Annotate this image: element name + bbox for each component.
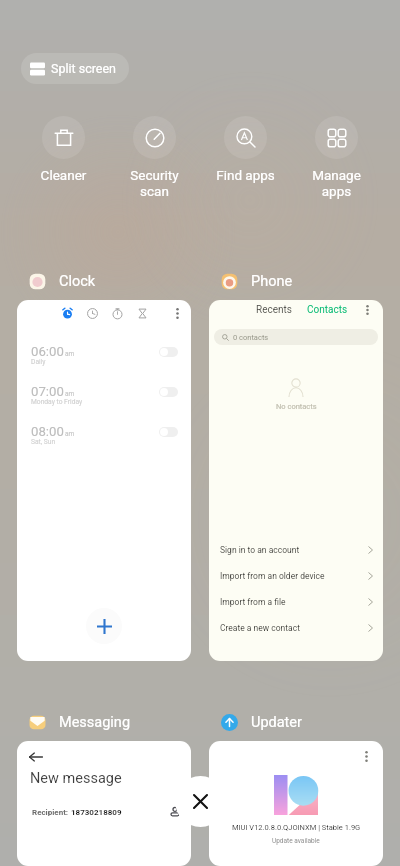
staticText: Create a new contact bbox=[220, 623, 300, 633]
staticText: 07:00 bbox=[31, 384, 64, 399]
button[interactable]: 06:00 bbox=[17, 300, 191, 661]
button[interactable]: Manage apps bbox=[291, 116, 382, 199]
staticText: 0 contacts bbox=[233, 333, 269, 342]
staticText: Security scan bbox=[109, 167, 200, 199]
button[interactable]: Cleaner bbox=[18, 116, 109, 183]
staticText: Update available bbox=[272, 837, 320, 845]
staticText: Import from an older device bbox=[220, 571, 325, 581]
staticText: Clock bbox=[59, 273, 96, 290]
staticText: Recipient: bbox=[32, 808, 71, 817]
button[interactable]: Find apps bbox=[200, 116, 291, 183]
button[interactable]: Recents bbox=[209, 300, 383, 661]
button[interactable]: Toggle alarm bbox=[159, 347, 178, 357]
button[interactable]: MIUI V12.0.8.0.QJOINXM | Stable 1.9G bbox=[209, 741, 383, 866]
staticText: 08:00 bbox=[31, 424, 64, 439]
staticText: Contacts bbox=[307, 304, 348, 316]
staticText: 18730218809 bbox=[71, 808, 122, 817]
staticText: Daily bbox=[31, 358, 46, 366]
staticText: am bbox=[65, 350, 75, 358]
button[interactable]: Toggle alarm bbox=[159, 427, 178, 437]
staticText: am bbox=[65, 430, 75, 438]
button[interactable]: Toggle alarm bbox=[159, 387, 178, 397]
staticText: Import from a file bbox=[220, 597, 286, 607]
button[interactable]: Create a new contact bbox=[209, 615, 383, 641]
staticText: Messaging bbox=[59, 714, 131, 731]
staticText: New message bbox=[30, 770, 122, 787]
staticText: 06:00 bbox=[31, 344, 64, 359]
staticText: am bbox=[65, 390, 75, 398]
staticText: Cleaner bbox=[18, 167, 109, 183]
staticText: Sign in to an account bbox=[220, 545, 300, 555]
button[interactable]: Import from an older device bbox=[209, 563, 383, 589]
button[interactable]: Import from a file bbox=[209, 589, 383, 615]
button[interactable]: Split screen bbox=[21, 53, 129, 84]
staticText: Split screen bbox=[51, 61, 116, 76]
staticText: Phone bbox=[251, 273, 293, 290]
staticText: MIUI V12.0.8.0.QJOINXM | Stable 1.9G bbox=[232, 823, 361, 832]
staticText: Manage apps bbox=[291, 167, 382, 199]
staticText: Sat, Sun bbox=[31, 438, 56, 446]
staticText: Monday to Friday bbox=[31, 398, 83, 406]
staticText: Recents bbox=[256, 304, 292, 316]
staticText: Updater bbox=[251, 714, 302, 731]
button[interactable]: Add alarm bbox=[86, 608, 122, 644]
button[interactable]: Close all apps bbox=[175, 776, 226, 827]
button[interactable]: Back bbox=[29, 750, 43, 764]
button[interactable]: Sign in to an account bbox=[209, 537, 383, 563]
staticText: Find apps bbox=[200, 167, 291, 183]
button[interactable]: 0 contacts bbox=[214, 329, 378, 345]
staticText: No contacts bbox=[276, 402, 317, 411]
button[interactable]: Security scan bbox=[109, 116, 200, 199]
button[interactable]: Back bbox=[17, 741, 191, 866]
